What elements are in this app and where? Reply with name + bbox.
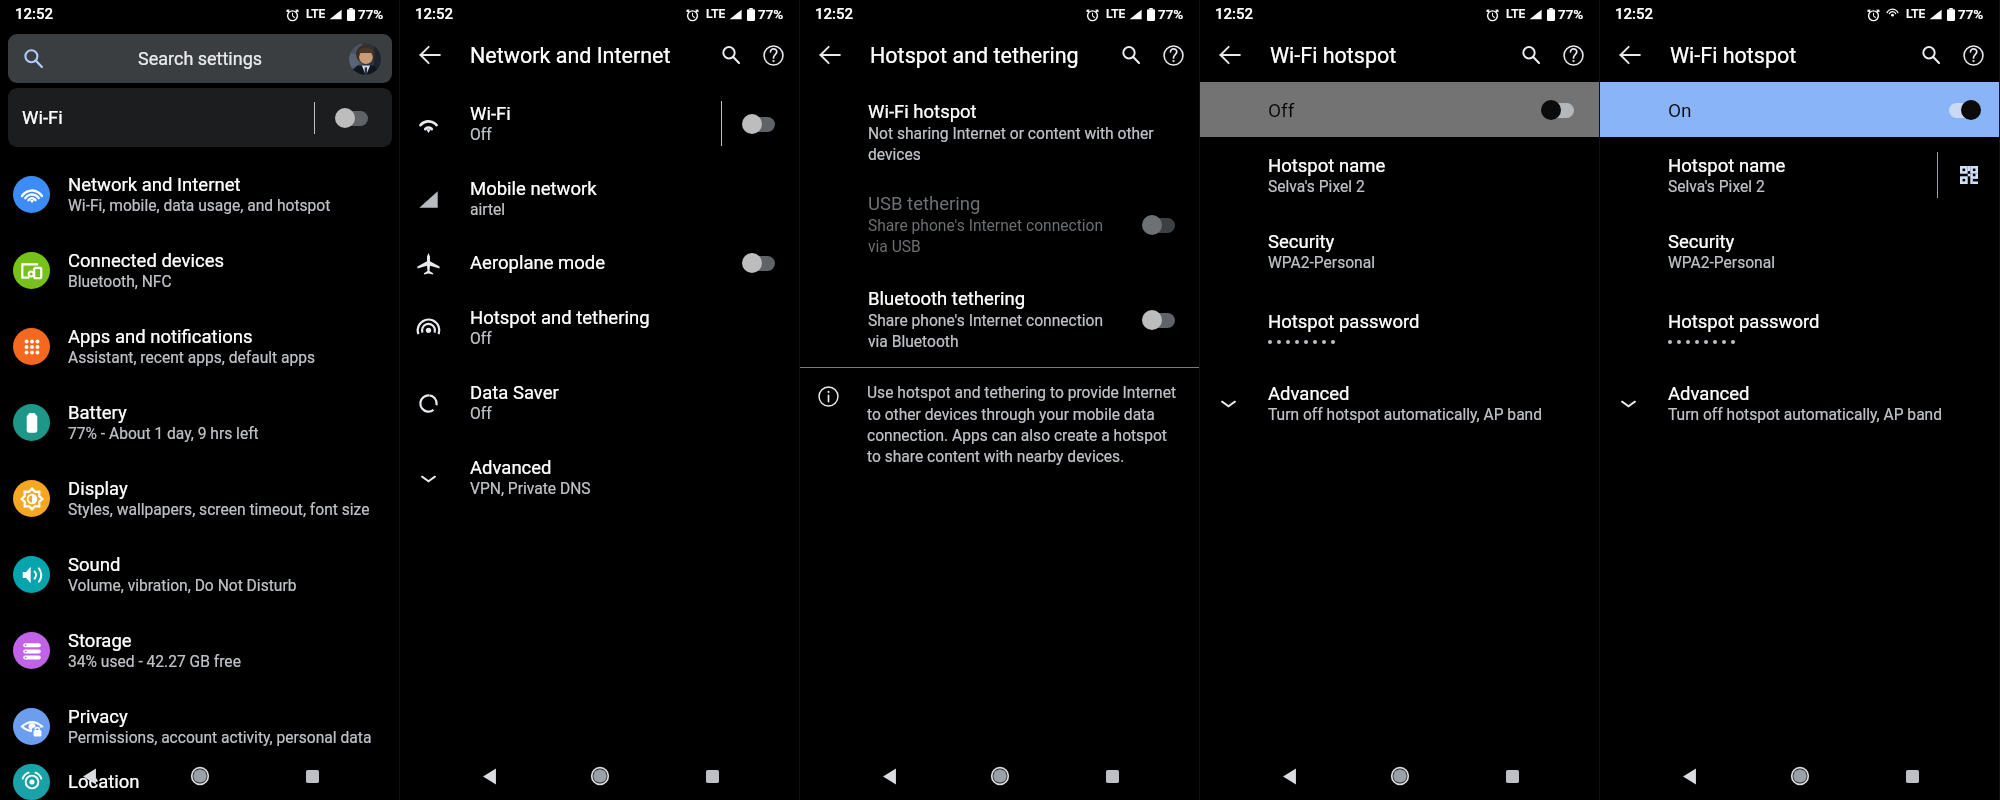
button[interactable]: Help	[752, 34, 794, 76]
button[interactable]: Mobile network	[400, 161, 800, 236]
button[interactable]: Network and Internet	[0, 156, 400, 232]
button[interactable]: Home	[1777, 753, 1823, 799]
button[interactable]: Battery	[0, 384, 400, 460]
button[interactable]: Search	[1110, 34, 1152, 76]
button[interactable]: Sound	[0, 536, 400, 612]
button[interactable]: Connected devices	[0, 232, 400, 308]
button[interactable]: Bluetooth tethering, off	[1142, 310, 1182, 330]
button[interactable]: Wi-Fi hotspot, on	[1941, 100, 1981, 120]
staticText: Turn off hotspot automatically, AP band	[1668, 406, 1943, 424]
staticText: Wi-Fi hotspot	[1270, 43, 1397, 68]
button[interactable]: Search settings	[8, 34, 392, 83]
button[interactable]: Recents	[1889, 753, 1935, 799]
button[interactable]: Advanced	[1200, 365, 1600, 441]
button[interactable]: Back	[66, 753, 112, 799]
button[interactable]: Location	[0, 764, 400, 800]
button[interactable]: Aeroplane mode	[400, 236, 800, 290]
button[interactable]: Search	[1510, 34, 1552, 76]
staticText: LTE	[306, 7, 326, 21]
staticText: Security	[1668, 231, 1735, 253]
button[interactable]: Display	[0, 460, 400, 536]
button[interactable]: Advanced	[400, 440, 800, 515]
staticText: 77%	[1958, 6, 1984, 22]
button[interactable]: Wi-Fi hotspot	[800, 88, 1200, 177]
button[interactable]: Recents	[689, 753, 735, 799]
button[interactable]: Account	[349, 43, 381, 75]
staticText: Sound	[68, 554, 121, 576]
button[interactable]: Navigate up	[408, 33, 452, 77]
staticText: Hotspot password	[1668, 311, 1820, 333]
staticText: Search settings	[138, 48, 263, 69]
staticText: Bluetooth, NFC	[68, 273, 172, 291]
button[interactable]: Navigate up	[1608, 33, 1652, 77]
button[interactable]: Advanced	[1600, 365, 2000, 441]
button[interactable]: Wi-Fi hotspot, off	[1541, 100, 1581, 120]
button[interactable]: Off	[1200, 82, 1600, 137]
button[interactable]: Bluetooth tethering	[800, 272, 1200, 367]
button[interactable]: Recents	[1489, 753, 1535, 799]
staticText: Hotspot name	[1268, 155, 1386, 177]
button[interactable]: Navigate up	[1208, 33, 1252, 77]
staticText: 34% used - 42.27 GB free	[68, 653, 241, 671]
staticText: WPA2-Personal	[1268, 254, 1375, 272]
button[interactable]: Privacy	[0, 688, 400, 764]
button[interactable]: Recents	[1089, 753, 1135, 799]
button[interactable]: Data Saver	[400, 365, 800, 440]
staticText: 77% - About 1 day, 9 hrs left	[68, 425, 259, 443]
button[interactable]: Home	[977, 753, 1023, 799]
staticText: Battery	[68, 402, 127, 424]
button[interactable]: Wi-Fi	[400, 86, 800, 161]
button[interactable]: Home	[177, 753, 223, 799]
button[interactable]: Aeroplane mode, off	[742, 253, 782, 273]
button[interactable]: Security	[1600, 213, 2000, 289]
button[interactable]: Apps and notifications	[0, 308, 400, 384]
button[interactable]: Home	[577, 753, 623, 799]
button[interactable]: Hotspot password	[1200, 289, 1600, 365]
staticText: Advanced	[1268, 383, 1350, 405]
button[interactable]: Search	[710, 34, 752, 76]
button[interactable]: Storage	[0, 612, 400, 688]
button[interactable]: Hotspot password	[1600, 289, 2000, 365]
button[interactable]: Search	[1910, 34, 1952, 76]
staticText: Aeroplane mode	[470, 252, 606, 274]
button[interactable]: Hotspot and tethering	[400, 290, 800, 365]
button[interactable]: Wi-Fi, off	[335, 108, 375, 128]
staticText: USB tethering	[868, 193, 981, 215]
staticText: Mobile network	[470, 178, 597, 200]
button[interactable]: Back	[866, 753, 912, 799]
staticText: 12:52	[1615, 5, 1654, 23]
button[interactable]: Help	[1552, 34, 1594, 76]
button[interactable]: Recents	[289, 753, 335, 799]
button[interactable]: Hotspot name	[1200, 137, 1600, 213]
staticText: Location	[68, 771, 140, 793]
button[interactable]: On	[1600, 82, 2000, 137]
button[interactable]: Wi-Fi	[8, 88, 392, 147]
staticText: LTE	[706, 7, 726, 21]
button[interactable]: Help	[1952, 34, 1994, 76]
staticText: Advanced	[470, 457, 552, 479]
button[interactable]: Help	[1152, 34, 1194, 76]
staticText: Storage	[68, 630, 132, 652]
button[interactable]: USB tethering	[800, 177, 1200, 272]
staticText: 77%	[358, 6, 384, 22]
button[interactable]: Navigate up	[808, 33, 852, 77]
button[interactable]: Home	[1377, 753, 1423, 799]
staticText: Assistant, recent apps, default apps	[68, 349, 316, 367]
staticText: Off	[470, 126, 492, 144]
button[interactable]: Hotspot name	[1600, 137, 2000, 213]
staticText: Selva's Pixel 2	[1668, 178, 1765, 196]
button[interactable]: Share hotspot QR code	[1954, 160, 1984, 190]
button[interactable]: Wi-Fi, off	[742, 114, 782, 134]
staticText: Apps and notifications	[68, 326, 253, 348]
staticText: Hotspot and tethering	[470, 307, 650, 329]
button[interactable]: Back	[1266, 753, 1312, 799]
button[interactable]: Security	[1200, 213, 1600, 289]
button[interactable]: USB tethering, off	[1142, 215, 1182, 235]
staticText: Wi-Fi	[470, 103, 511, 125]
staticText: Permissions, account activity, personal …	[68, 729, 372, 747]
staticText: Hotspot name	[1668, 155, 1786, 177]
staticText: Volume, vibration, Do Not Disturb	[68, 577, 297, 595]
button[interactable]: Back	[1666, 753, 1712, 799]
button[interactable]: Back	[466, 753, 512, 799]
staticText: Share phone's Internet connection via US…	[868, 217, 1118, 256]
